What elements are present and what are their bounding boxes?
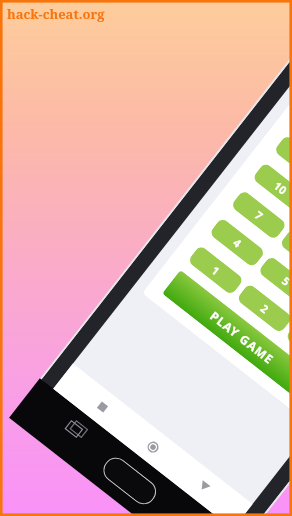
staticText: hack-cheat.org [7, 5, 105, 23]
button[interactable]: 7 [230, 189, 287, 240]
staticText: PLAY GAME [207, 307, 278, 367]
button[interactable]: 8 [279, 228, 292, 279]
button[interactable]: 4 [209, 217, 266, 268]
staticText: 7 [252, 207, 267, 223]
button[interactable]: 13 [273, 134, 292, 185]
staticText: 2 [258, 301, 272, 317]
staticText: 4 [230, 235, 245, 251]
button[interactable]: 5 [258, 255, 292, 306]
button[interactable]: 3 [285, 321, 292, 372]
button[interactable]: Recent apps [62, 415, 91, 442]
staticText: 1 [209, 262, 223, 278]
button[interactable]: PLAY GAME [162, 270, 292, 404]
button[interactable]: Home [100, 454, 160, 508]
button[interactable]: Back [183, 465, 225, 507]
staticText: 5 [279, 273, 292, 289]
button[interactable]: Home [132, 425, 174, 467]
button[interactable]: 1 [187, 245, 244, 296]
staticText: 10 [271, 178, 290, 198]
button[interactable]: 10 [252, 162, 292, 213]
button[interactable]: Recents [81, 386, 123, 428]
button[interactable]: 2 [236, 283, 292, 334]
